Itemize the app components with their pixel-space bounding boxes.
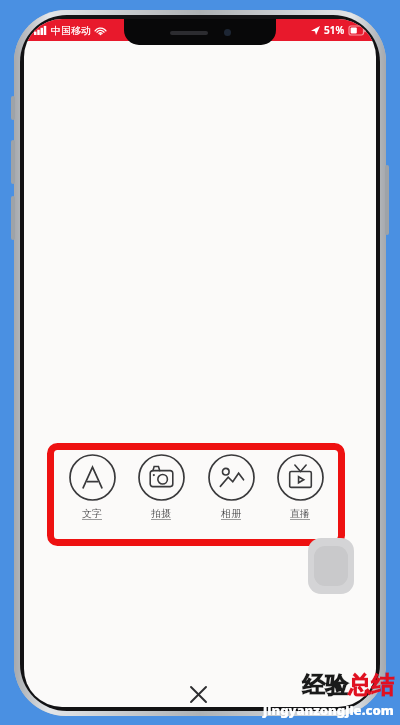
staticText: 拍摄 xyxy=(151,507,171,520)
staticText: 51% xyxy=(324,23,345,37)
button[interactable]: 拍摄 xyxy=(130,449,192,520)
staticText: 中国移动 xyxy=(51,24,91,37)
staticText: 文字 xyxy=(82,507,102,520)
button[interactable]: 直播 xyxy=(269,449,331,520)
button[interactable]: Draft xyxy=(308,538,354,594)
staticText: 经验 xyxy=(302,671,348,700)
button[interactable]: 文字 xyxy=(61,449,123,520)
staticText: 总结 xyxy=(348,671,394,700)
button[interactable]: 相册 xyxy=(200,449,262,520)
button[interactable]: Close xyxy=(178,674,218,707)
staticText: 直播 xyxy=(290,507,310,520)
staticText: 相册 xyxy=(221,507,241,520)
staticText: jingyanzongjie.com xyxy=(263,701,394,719)
